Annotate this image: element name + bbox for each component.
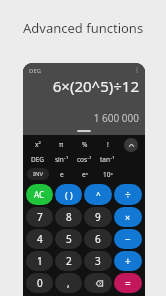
staticText: 5: [66, 232, 72, 246]
staticText: ,: [67, 276, 70, 290]
staticText: −: [125, 232, 131, 246]
staticText: =: [125, 276, 131, 290]
staticText: eˣ: [82, 170, 88, 179]
button[interactable]: More options: [132, 65, 142, 75]
button[interactable]: =: [114, 273, 142, 293]
staticText: 2: [66, 254, 72, 268]
button[interactable]: ,: [55, 273, 82, 293]
button[interactable]: %: [73, 137, 96, 152]
staticText: AC: [34, 189, 45, 200]
button[interactable]: x²: [26, 137, 50, 152]
staticText: 1: [37, 254, 43, 268]
button[interactable]: 9: [84, 207, 112, 227]
staticText: ( ): [65, 189, 73, 201]
button[interactable]: AC: [26, 184, 53, 205]
button[interactable]: DEG: [26, 152, 50, 166]
button[interactable]: +: [114, 251, 142, 271]
staticText: ×: [125, 211, 131, 223]
staticText: tan⁻¹: [100, 155, 115, 164]
button[interactable]: π: [50, 137, 73, 152]
staticText: 3: [95, 254, 101, 268]
staticText: !: [107, 140, 109, 149]
staticText: cos⁻¹: [77, 155, 92, 164]
button[interactable]: −: [114, 229, 142, 249]
button[interactable]: 6: [84, 229, 112, 249]
button[interactable]: 10ˣ: [96, 166, 119, 182]
staticText: %: [82, 140, 88, 149]
staticText: 1 600 000: [93, 111, 139, 125]
button[interactable]: 2: [55, 251, 82, 271]
staticText: ^: [96, 189, 101, 200]
button[interactable]: ×: [114, 207, 142, 227]
button[interactable]: 5: [55, 229, 82, 249]
button[interactable]: e: [50, 166, 73, 182]
button[interactable]: 8: [55, 207, 82, 227]
staticText: ÷: [125, 188, 131, 202]
button[interactable]: 1: [26, 251, 53, 271]
staticText: π: [59, 140, 64, 149]
staticText: 0: [37, 276, 43, 290]
staticText: DEG: [31, 155, 45, 164]
staticText: sin⁻¹: [55, 155, 69, 164]
staticText: Advanced functions: [23, 19, 144, 37]
staticText: 6×(20^5)÷12: [52, 76, 139, 96]
staticText: e: [60, 170, 64, 179]
button[interactable]: ÷: [114, 184, 142, 205]
button[interactable]: tan⁻¹: [96, 152, 119, 166]
button[interactable]: 7: [26, 207, 53, 227]
button[interactable]: 3: [84, 251, 112, 271]
staticText: 9: [95, 210, 101, 224]
button[interactable]: 4: [26, 229, 53, 249]
staticText: 8: [66, 210, 72, 224]
button[interactable]: !: [96, 137, 119, 152]
button[interactable]: eˣ: [73, 166, 96, 182]
staticText: 4: [37, 232, 43, 246]
staticText: +: [125, 254, 131, 268]
staticText: DEG: [29, 67, 42, 75]
staticText: 6: [95, 232, 101, 246]
button[interactable]: 0: [26, 273, 53, 293]
button[interactable]: cos⁻¹: [73, 152, 96, 166]
button[interactable]: ( ): [55, 184, 82, 205]
staticText: 7: [37, 210, 43, 224]
button[interactable]: INV: [27, 168, 49, 180]
button[interactable]: ^: [84, 184, 112, 205]
button[interactable]: Collapse functions: [124, 138, 138, 152]
button[interactable]: Backspace: [84, 273, 112, 293]
staticText: 10ˣ: [103, 170, 113, 179]
staticText: x²: [35, 140, 41, 149]
button[interactable]: sin⁻¹: [50, 152, 73, 166]
staticText: INV: [33, 170, 44, 178]
